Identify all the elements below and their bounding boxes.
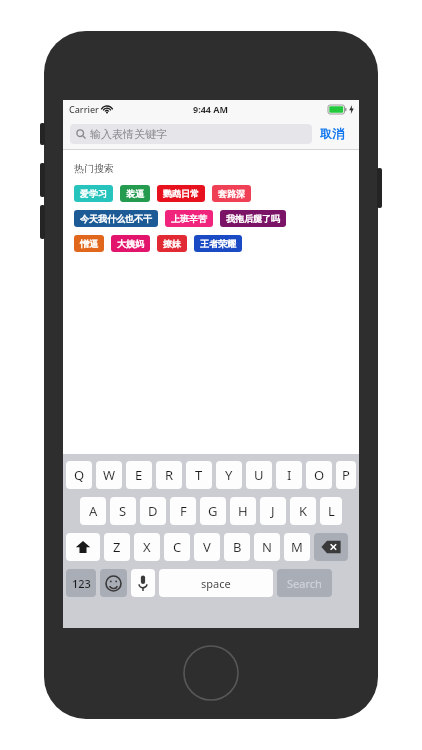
- staticText: Q: [74, 466, 85, 484]
- button[interactable]: L: [320, 497, 342, 525]
- staticText: 我拖后腿了吗: [226, 213, 280, 224]
- button[interactable]: Backspace: [314, 533, 348, 561]
- staticText: 取消: [320, 126, 344, 141]
- button[interactable]: Z: [104, 533, 130, 561]
- staticText: Y: [225, 466, 233, 484]
- button[interactable]: E: [126, 461, 152, 489]
- staticText: M: [291, 538, 303, 556]
- button[interactable]: 上班辛苦: [165, 210, 213, 227]
- staticText: 123: [72, 576, 91, 591]
- button[interactable]: Q: [66, 461, 92, 489]
- staticText: G: [208, 502, 218, 520]
- button[interactable]: H: [230, 497, 256, 525]
- button[interactable]: space: [159, 569, 273, 597]
- staticText: 装逼: [126, 188, 144, 199]
- staticText: N: [262, 538, 272, 556]
- staticText: J: [271, 502, 275, 520]
- button[interactable]: P: [336, 461, 356, 489]
- staticText: P: [342, 466, 350, 484]
- staticText: I: [287, 466, 292, 484]
- staticText: 输入表情关键字: [90, 127, 167, 141]
- staticText: 大姨妈: [117, 238, 144, 249]
- button[interactable]: Y: [216, 461, 242, 489]
- button[interactable]: N: [254, 533, 280, 561]
- button[interactable]: W: [96, 461, 122, 489]
- staticText: 爱学习: [80, 188, 107, 199]
- staticText: 今天我什么也不干: [80, 213, 152, 224]
- button[interactable]: V: [194, 533, 220, 561]
- button[interactable]: 123: [66, 569, 96, 597]
- staticText: E: [135, 466, 143, 484]
- button[interactable]: 憎逼: [74, 235, 104, 252]
- button[interactable]: 鹦鹉日常: [157, 185, 205, 202]
- button[interactable]: Emoji: [100, 569, 127, 597]
- button[interactable]: 王者荣耀: [194, 235, 242, 252]
- staticText: H: [238, 502, 248, 520]
- staticText: X: [143, 538, 151, 556]
- button[interactable]: I: [276, 461, 302, 489]
- button[interactable]: 爱学习: [74, 185, 113, 202]
- button[interactable]: C: [164, 533, 190, 561]
- staticText: B: [233, 538, 242, 556]
- button[interactable]: M: [284, 533, 310, 561]
- button[interactable]: 大姨妈: [111, 235, 150, 252]
- button[interactable]: 套路深: [212, 185, 251, 202]
- button[interactable]: 撩妹: [157, 235, 187, 252]
- staticText: 上班辛苦: [171, 213, 207, 224]
- staticText: Carrier: [69, 103, 99, 115]
- staticText: Search: [287, 576, 322, 591]
- staticText: 热门搜索: [74, 162, 114, 175]
- staticText: S: [119, 502, 127, 520]
- button[interactable]: O: [306, 461, 332, 489]
- button[interactable]: 今天我什么也不干: [74, 210, 158, 227]
- staticText: space: [201, 576, 231, 591]
- button[interactable]: 装逼: [120, 185, 150, 202]
- staticText: F: [180, 502, 187, 520]
- staticText: 撩妹: [163, 238, 181, 249]
- staticText: D: [148, 502, 158, 520]
- staticText: U: [254, 466, 264, 484]
- staticText: T: [195, 466, 203, 484]
- button[interactable]: K: [290, 497, 316, 525]
- button[interactable]: D: [140, 497, 166, 525]
- button[interactable]: Shift: [66, 533, 100, 561]
- button[interactable]: B: [224, 533, 250, 561]
- button[interactable]: G: [200, 497, 226, 525]
- staticText: 王者荣耀: [200, 238, 236, 249]
- staticText: W: [103, 466, 116, 484]
- staticText: R: [165, 466, 174, 484]
- staticText: O: [314, 466, 325, 484]
- button[interactable]: X: [134, 533, 160, 561]
- staticText: 套路深: [218, 188, 245, 199]
- button[interactable]: J: [260, 497, 286, 525]
- button[interactable]: 输入表情关键字: [70, 124, 312, 144]
- button[interactable]: U: [246, 461, 272, 489]
- button[interactable]: F: [170, 497, 196, 525]
- staticText: C: [173, 538, 182, 556]
- button[interactable]: T: [186, 461, 212, 489]
- staticText: V: [203, 538, 211, 556]
- staticText: Z: [113, 538, 121, 556]
- staticText: K: [299, 502, 308, 520]
- button[interactable]: 我拖后腿了吗: [220, 210, 286, 227]
- staticText: L: [328, 502, 335, 520]
- button[interactable]: Search: [277, 569, 332, 597]
- button[interactable]: Dictation: [131, 569, 155, 597]
- staticText: 9:44 AM: [193, 103, 229, 115]
- staticText: A: [89, 502, 98, 520]
- button[interactable]: R: [156, 461, 182, 489]
- button[interactable]: S: [110, 497, 136, 525]
- staticText: 憎逼: [80, 238, 98, 249]
- staticText: 鹦鹉日常: [163, 188, 199, 199]
- button[interactable]: A: [80, 497, 106, 525]
- button[interactable]: 取消: [312, 122, 352, 145]
